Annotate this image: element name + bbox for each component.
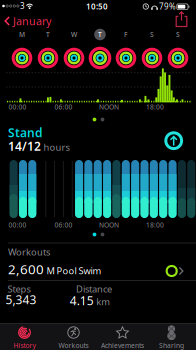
staticText: S (176, 30, 180, 39)
staticText: hours (43, 141, 69, 153)
staticText: 2,600 (8, 260, 44, 278)
staticText: 14/12 (8, 138, 41, 154)
staticText: Achievements (101, 341, 144, 350)
button[interactable]: Achievements (98, 323, 147, 350)
staticText: Sharing (159, 341, 184, 350)
staticText: 06:00 (54, 221, 72, 229)
button[interactable]: Day S (139, 24, 165, 70)
staticText: 10:50 (86, 1, 108, 12)
staticText: M (19, 30, 25, 39)
staticText: Workouts (58, 341, 88, 350)
staticText: 06:00 (54, 103, 72, 111)
staticText: T (46, 30, 50, 39)
button[interactable]: Day M (9, 24, 35, 70)
button[interactable]: Day T (35, 24, 61, 70)
button[interactable]: History (0, 323, 49, 350)
button[interactable]: Sharing (147, 323, 196, 350)
staticText: M Pool Swim (46, 264, 101, 277)
staticText: F (124, 30, 128, 39)
staticText: 18:00 (146, 103, 164, 111)
staticText: km (96, 295, 110, 308)
staticText: Steps (7, 283, 30, 295)
button[interactable]: 2,600 (0, 259, 196, 279)
button[interactable]: Back (0, 13, 62, 29)
button[interactable]: Share (171, 11, 193, 31)
staticText: 3 (20, 1, 25, 11)
button[interactable]: Day S (165, 24, 191, 70)
staticText: W (71, 30, 77, 39)
button[interactable]: Day W (61, 24, 87, 70)
staticText: History (13, 341, 35, 350)
button[interactable]: Day T (87, 24, 113, 70)
staticText: Distance (76, 283, 112, 295)
staticText: Stand (8, 124, 43, 140)
staticText: T (98, 30, 102, 39)
staticText: 4.15 (70, 292, 94, 308)
staticText: January (13, 14, 51, 28)
staticText: S (150, 30, 154, 39)
staticText: 00:00 (8, 103, 26, 111)
staticText: 00:00 (8, 221, 26, 229)
staticText: 79% (159, 1, 176, 12)
button[interactable]: Workouts (49, 323, 98, 350)
staticText: Workouts (8, 246, 50, 258)
staticText: 5,343 (5, 291, 36, 307)
staticText: NOON (99, 221, 119, 229)
staticText: NOON (99, 103, 119, 111)
staticText: 18:00 (146, 221, 164, 229)
button[interactable]: Day F (113, 24, 139, 70)
